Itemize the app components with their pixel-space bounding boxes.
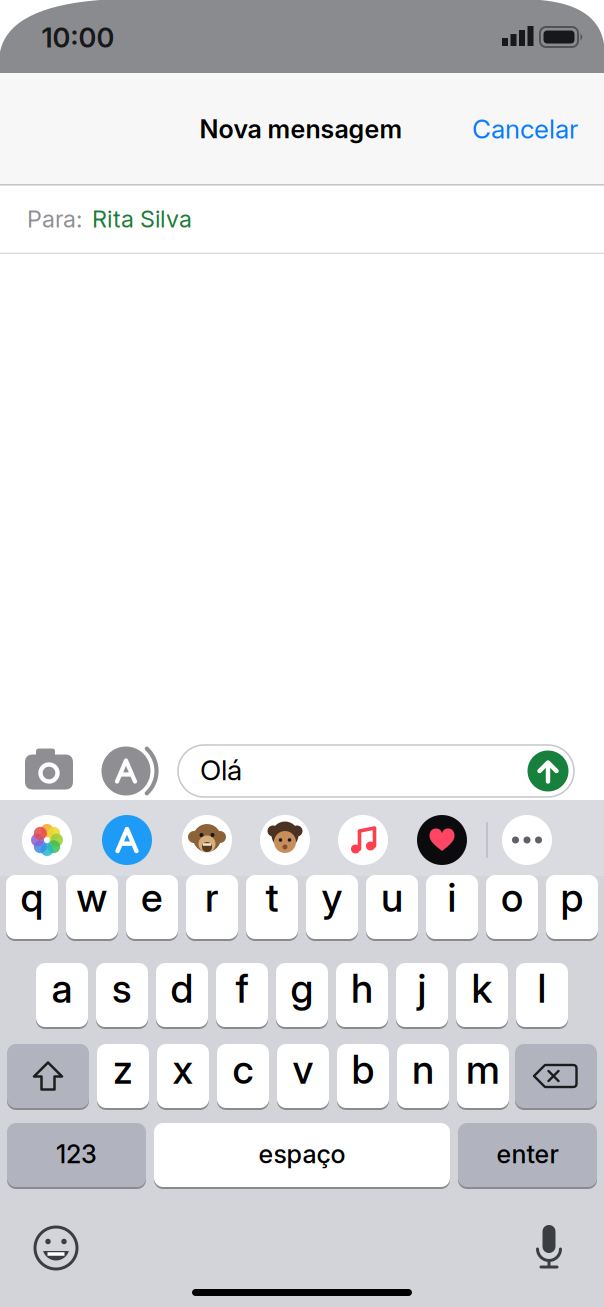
button[interactable]: Cancelar [472,113,578,145]
button[interactable]: Emoji [35,1227,77,1269]
button[interactable]: i [426,874,478,940]
staticText: g [290,965,313,1012]
button[interactable]: Enviar [527,750,568,791]
staticText: p [560,874,583,921]
button[interactable]: e [126,874,178,940]
staticText: r [205,874,219,921]
staticText: k [471,965,492,1012]
staticText: Para: [27,205,82,233]
button[interactable]: h [336,962,388,1028]
button[interactable]: z [97,1043,149,1109]
staticText: c [232,1046,253,1093]
button[interactable]: Memoji [260,815,310,865]
staticText: e [141,874,163,921]
staticText: z [113,1046,133,1093]
button[interactable]: Música [338,815,388,865]
button[interactable]: enter [458,1122,597,1188]
staticText: j [417,965,426,1012]
button[interactable]: Câmara [22,745,76,792]
staticText: d [170,965,193,1012]
button[interactable]: a [36,962,88,1028]
staticText: b [351,1046,374,1093]
button[interactable]: v [277,1043,329,1109]
staticText: h [351,965,373,1012]
staticText: Nova mensagem [199,114,402,144]
button[interactable]: 123 [7,1122,146,1188]
button[interactable]: r [186,874,238,940]
staticText: n [412,1046,434,1093]
staticText: a [51,965,72,1012]
staticText: u [381,874,403,921]
button[interactable]: l [516,962,568,1028]
button[interactable]: y [306,874,358,940]
staticText: Rita Silva [92,205,192,233]
button[interactable]: j [396,962,448,1028]
button[interactable]: q [6,874,58,940]
button[interactable]: Shift [7,1043,89,1109]
button[interactable]: g [276,962,328,1028]
button[interactable]: n [397,1043,449,1109]
staticText: i [447,874,456,921]
button[interactable]: c [217,1043,269,1109]
staticText: q [20,874,43,921]
staticText: Cancelar [472,113,578,145]
button[interactable]: Digital Touch [417,815,467,865]
staticText: 123 [56,1139,97,1169]
button[interactable]: k [456,962,508,1028]
staticText: t [265,874,278,921]
button[interactable]: u [366,874,418,940]
staticText: 10:00 [41,21,114,54]
button[interactable]: espaço [154,1122,450,1188]
button[interactable]: p [546,874,598,940]
staticText: Olá [200,753,242,787]
staticText: m [466,1046,500,1093]
button[interactable]: App Store [102,815,152,865]
staticText: y [321,874,342,921]
button[interactable]: f [216,962,268,1028]
button[interactable]: App Store [93,738,159,804]
button[interactable]: s [96,962,148,1028]
button[interactable]: b [337,1043,389,1109]
button[interactable]: Ditar [533,1227,565,1269]
button[interactable]: Fotografias [22,815,72,865]
staticText: enter [496,1139,558,1169]
button[interactable]: d [156,962,208,1028]
button[interactable]: Memoji de animais [182,815,232,865]
staticText: l [537,965,546,1012]
staticText: w [76,874,107,921]
staticText: v [292,1046,313,1093]
staticText: x [172,1046,193,1093]
button[interactable]: w [66,874,118,940]
staticText: s [112,965,132,1012]
button[interactable]: Mais [502,815,552,865]
staticText: o [501,874,523,921]
staticText: f [235,965,248,1012]
staticText: espaço [258,1139,345,1169]
button[interactable]: t [246,874,298,940]
button[interactable]: m [457,1043,509,1109]
button[interactable]: Apagar [515,1043,597,1109]
button[interactable]: x [157,1043,209,1109]
button[interactable]: o [486,874,538,940]
